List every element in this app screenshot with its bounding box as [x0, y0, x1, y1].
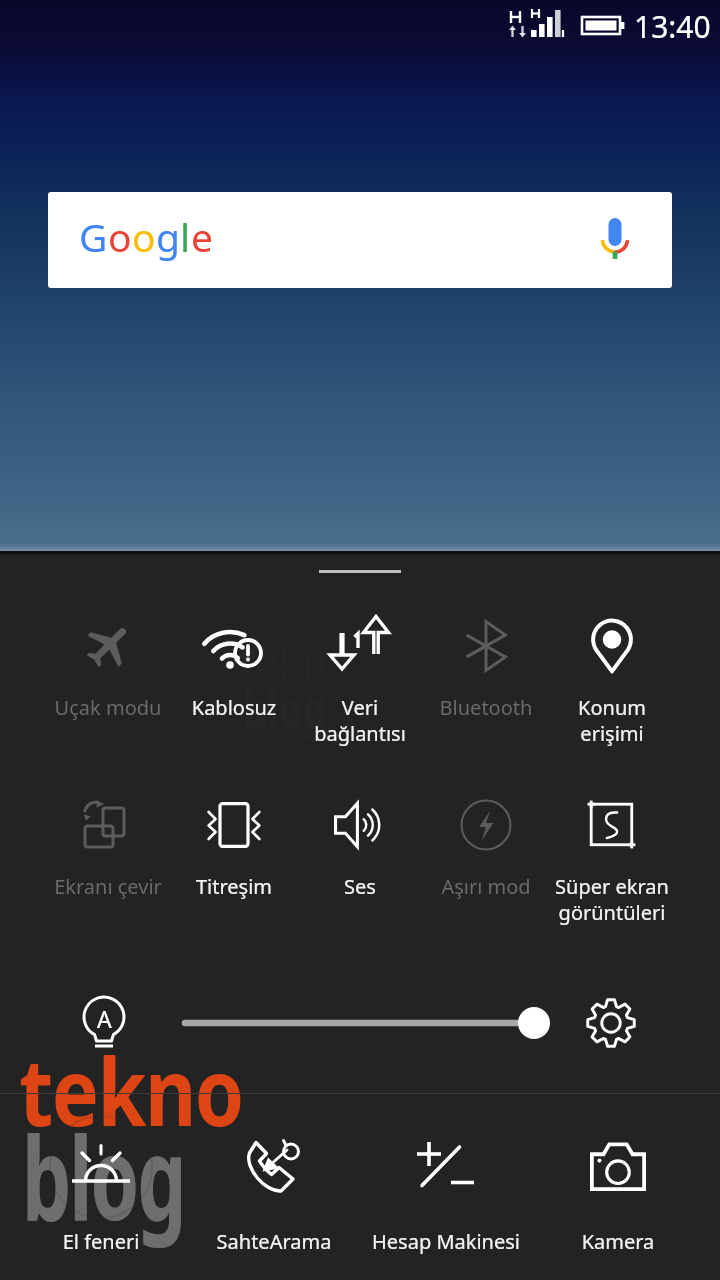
staticText: Bluetooth — [414, 694, 558, 721]
staticText: Veri bağlantısı — [288, 694, 432, 747]
staticText: Hesap Makinesi — [360, 1228, 532, 1255]
staticText: 13:40 — [634, 6, 711, 47]
staticText: g — [156, 210, 180, 263]
staticText: Aşırı mod — [414, 873, 558, 900]
staticText: Ekranı çevir — [36, 873, 180, 900]
button[interactable]: El feneri — [15, 1115, 187, 1274]
staticText: e — [191, 210, 213, 263]
staticText: tekno — [19, 1026, 243, 1154]
staticText: tekno — [240, 630, 350, 692]
staticText: Kamera — [532, 1228, 704, 1255]
button[interactable]: Titreşim — [162, 785, 306, 945]
button[interactable]: G — [48, 192, 672, 288]
staticText: Süper ekran görüntüleri — [540, 873, 684, 926]
button[interactable]: SahteArama — [188, 1115, 360, 1274]
staticText: A — [97, 1003, 112, 1034]
button[interactable]: Uçak modu — [36, 606, 180, 766]
staticText: G — [79, 210, 108, 263]
button[interactable]: Kablosuz — [162, 606, 306, 766]
staticText: SahteArama — [188, 1228, 360, 1255]
staticText: Konum erişimi — [540, 694, 684, 747]
button[interactable]: Bluetooth — [414, 606, 558, 766]
staticText: Ses — [288, 873, 432, 900]
other: Voice search — [600, 217, 630, 261]
staticText: Uçak modu — [36, 694, 180, 721]
button[interactable]: Ekranı çevir — [36, 785, 180, 945]
staticText: o — [132, 210, 156, 263]
staticText: o — [108, 210, 132, 263]
staticText: l — [180, 210, 191, 263]
button[interactable]: Aşırı mod — [414, 785, 558, 945]
button[interactable]: Hesap Makinesi — [360, 1115, 532, 1274]
button[interactable]: Veri bağlantısı — [288, 606, 432, 766]
staticText: Titreşim — [162, 873, 306, 900]
staticText: blog — [22, 1098, 185, 1254]
staticText: El feneri — [15, 1228, 187, 1255]
button[interactable]: Auto brightness — [60, 979, 148, 1067]
staticText: Kablosuz — [162, 694, 306, 721]
staticText: blog — [243, 670, 327, 745]
button[interactable]: Süper ekran görüntüleri — [540, 785, 684, 945]
button[interactable]: Kamera — [532, 1115, 704, 1274]
button[interactable]: Konum erişimi — [540, 606, 684, 766]
button[interactable]: Ses — [288, 785, 432, 945]
button[interactable]: Settings — [567, 979, 655, 1067]
